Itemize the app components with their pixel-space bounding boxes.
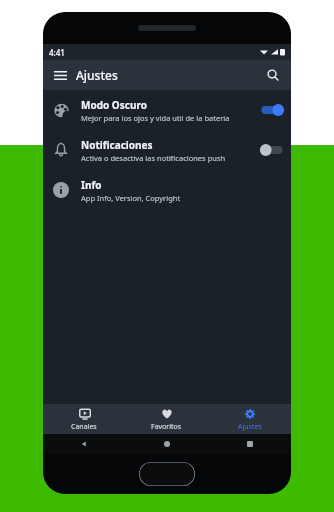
- staticText: Mejor para los ojos y vida util de la ba…: [81, 113, 230, 123]
- button[interactable]: Modo Oscuro: [43, 90, 291, 130]
- button[interactable]: Canales: [43, 404, 125, 434]
- button[interactable]: Notificaciones: [43, 130, 291, 170]
- button[interactable]: Ajustes: [208, 404, 291, 434]
- button[interactable]: Recent apps: [208, 434, 291, 454]
- button[interactable]: Favoritos: [125, 404, 208, 434]
- staticText: Favoritos: [151, 422, 182, 432]
- button[interactable]: Notificaciones toggle: [260, 143, 284, 157]
- staticText: Info: [81, 178, 102, 192]
- button[interactable]: Back: [43, 434, 125, 454]
- button[interactable]: Menu: [48, 63, 72, 87]
- staticText: Ajustes: [76, 67, 118, 83]
- button[interactable]: Info: [43, 170, 291, 210]
- staticText: Canales: [71, 422, 97, 432]
- staticText: Notificaciones: [81, 138, 153, 152]
- staticText: Ajustes: [238, 422, 262, 432]
- button[interactable]: Search: [261, 63, 285, 87]
- staticText: App Info, Version, Copyright: [81, 193, 181, 203]
- staticText: Modo Oscuro: [81, 98, 147, 112]
- button[interactable]: Home: [125, 434, 208, 454]
- button[interactable]: Modo Oscuro toggle: [260, 103, 284, 117]
- staticText: 4:41: [49, 47, 65, 58]
- staticText: Activa o desactiva las notificaciones pu…: [81, 153, 226, 163]
